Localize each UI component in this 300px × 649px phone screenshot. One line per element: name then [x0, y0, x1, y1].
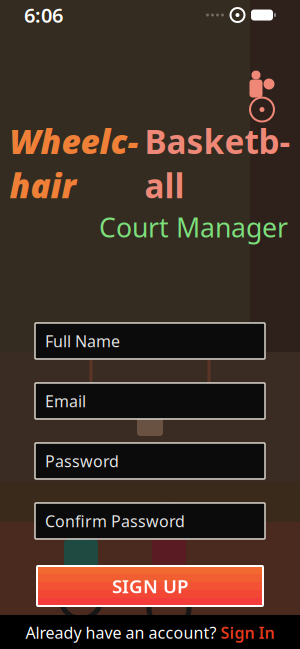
- button[interactable]: Already have an account?: [11, 618, 288, 647]
- button[interactable]: Password: [35, 443, 265, 479]
- staticText: 6:06: [24, 2, 63, 28]
- button[interactable]: Email: [35, 383, 265, 419]
- staticText: Court Manager: [99, 210, 288, 245]
- button[interactable]: Confirm Password: [35, 503, 265, 539]
- staticText: Already have an account?: [25, 622, 216, 643]
- button[interactable]: Full Name: [35, 323, 265, 359]
- staticText: Password: [45, 450, 119, 471]
- button[interactable]: SIGN UP: [35, 565, 265, 607]
- staticText: Sign In: [220, 622, 274, 643]
- staticText: SIGN UP: [112, 574, 188, 598]
- staticText: Confirm Password: [45, 510, 185, 531]
- staticText: Email: [45, 390, 86, 411]
- staticText: Wheelchair: [9, 119, 138, 207]
- staticText: Basketball: [144, 119, 290, 207]
- staticText: Full Name: [45, 330, 120, 351]
